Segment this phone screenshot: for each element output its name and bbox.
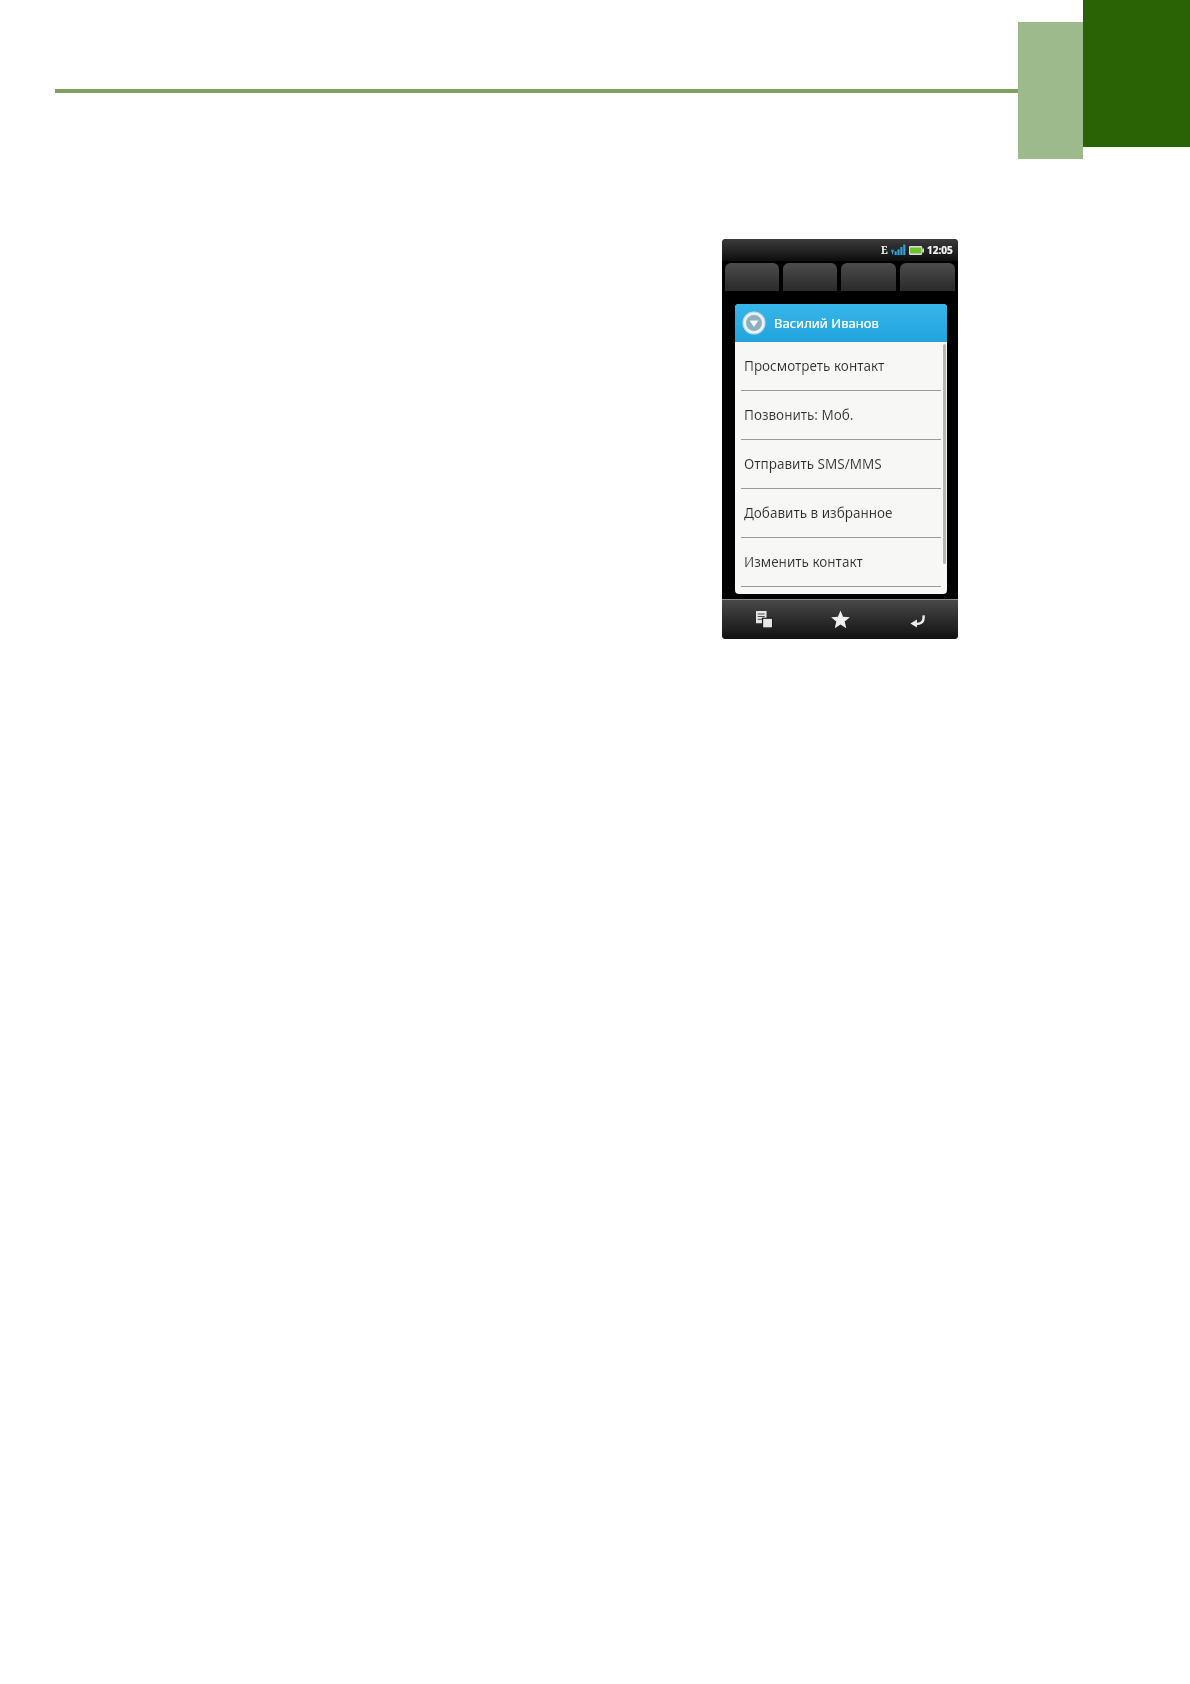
staticText: Добавить в избранное [744, 504, 893, 522]
staticText: Василий Иванов [774, 314, 879, 332]
button[interactable]: Василий Иванов [735, 304, 947, 342]
staticText: Изменить контакт [744, 553, 863, 571]
staticText: 12:05 [927, 243, 953, 257]
button[interactable]: Back [882, 599, 952, 639]
staticText: Позвонить: Моб. [744, 406, 854, 424]
button[interactable]: Изменить контакт [735, 538, 947, 586]
staticText: Просмотреть контакт [744, 357, 885, 375]
staticText: E [881, 243, 888, 257]
button[interactable]: Просмотреть контакт [735, 342, 947, 390]
button[interactable]: Добавить в избранное [735, 489, 947, 537]
button[interactable]: Favorites [805, 599, 875, 639]
button[interactable]: Menu [729, 599, 799, 639]
button[interactable]: Позвонить: Моб. [735, 391, 947, 439]
staticText: Отправить SMS/MMS [744, 455, 882, 473]
button[interactable]: Отправить SMS/MMS [735, 440, 947, 488]
